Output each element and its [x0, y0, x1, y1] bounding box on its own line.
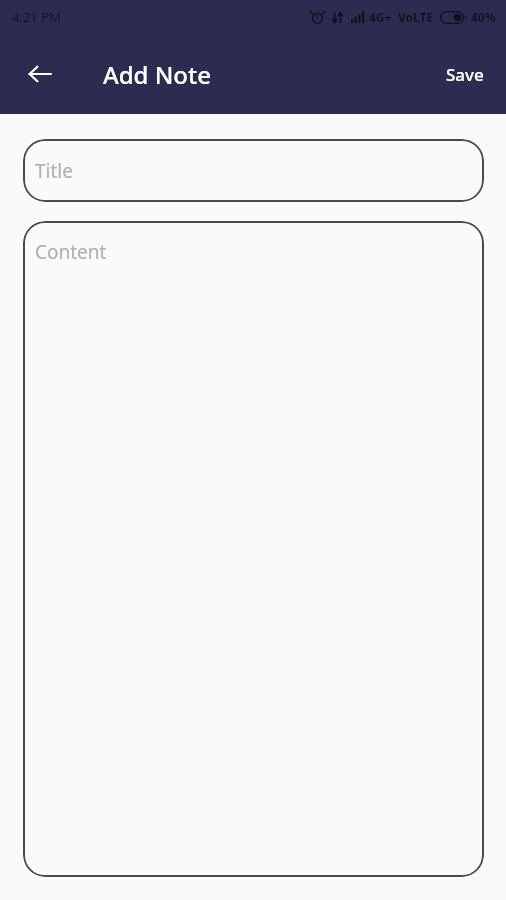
button[interactable]: Title [23, 139, 484, 202]
staticText: Add Note [103, 58, 211, 91]
staticText: Title [35, 158, 73, 184]
staticText: 4G+ [369, 9, 392, 25]
staticText: VoLTE [398, 9, 434, 25]
button[interactable]: Back [16, 50, 64, 98]
button[interactable]: Content [23, 221, 484, 877]
staticText: Save [446, 63, 484, 86]
staticText: Content [35, 239, 107, 265]
button[interactable]: Save [434, 53, 496, 96]
staticText: 40% [471, 9, 496, 25]
staticText: 4:21 PM [12, 8, 61, 26]
